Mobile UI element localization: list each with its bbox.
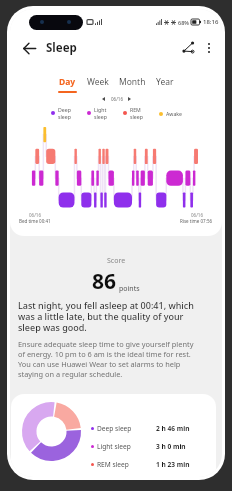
staticText: Last night, you fell asleep at 00:41, wh… [18, 299, 198, 333]
button[interactable]: More options [199, 38, 219, 58]
staticText: Rise time 07:56 [180, 218, 213, 224]
staticText: 06/16 [191, 212, 203, 218]
staticText: Ensure adequate sleep time to give yours… [18, 339, 198, 379]
staticText: Sleep [46, 40, 77, 56]
staticText: 3 h 0 min [156, 442, 186, 451]
button[interactable]: Share [177, 37, 199, 59]
staticText: Bed time 00:41 [19, 218, 51, 224]
button[interactable]: Day [53, 67, 82, 93]
staticText: Score [107, 256, 126, 266]
staticText: points [119, 284, 140, 294]
staticText: 2 h 46 min [156, 424, 190, 433]
staticText: sleep [130, 113, 143, 120]
staticText: 68% [178, 19, 189, 26]
staticText: Awake [166, 110, 182, 117]
staticText: Month [119, 76, 146, 88]
staticText: REM sleep [97, 460, 156, 469]
staticText: Deep [58, 106, 71, 113]
staticText: 06/16 [29, 212, 41, 218]
staticText: 86 [92, 267, 117, 296]
staticText: Year [156, 76, 174, 88]
staticText: 18:16 [203, 18, 219, 26]
staticText: Light sleep [97, 442, 156, 451]
staticText: sleep [94, 113, 107, 120]
staticText: Day [59, 76, 76, 88]
staticText: Week [87, 76, 109, 88]
button[interactable]: Week [82, 67, 114, 93]
staticText: sleep [58, 113, 71, 120]
staticText: 1 h 23 min [156, 460, 190, 469]
staticText: 06/16 [111, 96, 123, 102]
staticText: Light [94, 106, 107, 113]
button[interactable]: Back [17, 36, 41, 60]
button[interactable]: Month [114, 67, 151, 93]
staticText: Deep sleep [97, 424, 156, 433]
button[interactable]: Year [151, 67, 179, 93]
staticText: REM [130, 106, 141, 113]
